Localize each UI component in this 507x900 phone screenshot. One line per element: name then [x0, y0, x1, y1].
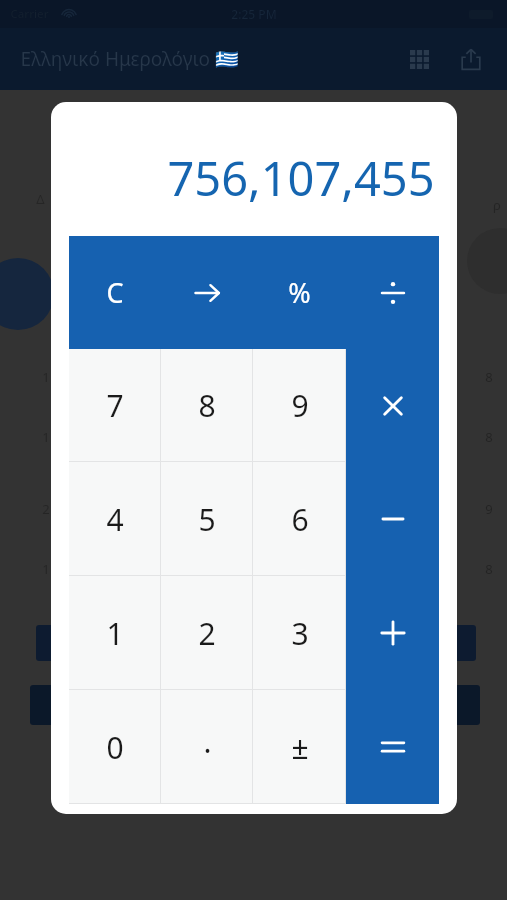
- button[interactable]: 1: [69, 576, 161, 690]
- staticText: 9: [291, 385, 309, 426]
- button[interactable]: .: [161, 690, 253, 804]
- button[interactable]: 5: [161, 462, 253, 576]
- staticText: 2:25 PM: [231, 6, 277, 22]
- staticText: 8: [485, 560, 493, 578]
- staticText: Δ: [36, 190, 45, 208]
- staticText: 1: [42, 368, 50, 386]
- staticText: C: [106, 274, 124, 311]
- button[interactable]: [346, 690, 439, 804]
- button[interactable]: 9: [253, 349, 346, 462]
- staticText: ρ: [493, 196, 501, 214]
- staticText: 8: [198, 385, 216, 426]
- button[interactable]: 4: [69, 462, 161, 576]
- staticText: 5: [198, 499, 216, 540]
- staticText: 4: [106, 499, 124, 540]
- staticText: 8: [485, 428, 493, 446]
- staticText: 8: [485, 368, 493, 386]
- staticText: 9: [485, 500, 493, 518]
- button[interactable]: [346, 576, 439, 690]
- button[interactable]: [346, 349, 439, 462]
- button[interactable]: [161, 236, 253, 349]
- button[interactable]: 8: [161, 349, 253, 462]
- button[interactable]: 0: [69, 690, 161, 804]
- button[interactable]: Apps grid: [399, 39, 439, 79]
- staticText: ±: [291, 727, 309, 768]
- staticText: 2: [42, 500, 50, 518]
- staticText: 2: [198, 613, 216, 654]
- button[interactable]: 6: [253, 462, 346, 576]
- button[interactable]: 7: [69, 349, 161, 462]
- staticText: 1: [42, 428, 50, 446]
- button[interactable]: ±: [253, 690, 346, 804]
- button[interactable]: [346, 236, 439, 349]
- staticText: 0: [106, 727, 124, 768]
- staticText: %: [288, 274, 311, 311]
- button[interactable]: [346, 462, 439, 576]
- staticText: .: [203, 721, 212, 762]
- button[interactable]: C: [69, 236, 161, 349]
- button[interactable]: %: [253, 236, 346, 349]
- staticText: 1: [42, 560, 50, 578]
- button[interactable]: 2: [161, 576, 253, 690]
- staticText: 3: [291, 613, 309, 654]
- button[interactable]: Share: [451, 39, 491, 79]
- staticText: 1: [106, 613, 124, 654]
- staticText: 6: [291, 499, 309, 540]
- staticText: 7: [106, 385, 124, 426]
- staticText: 756,107,455: [167, 146, 435, 210]
- button[interactable]: 3: [253, 576, 346, 690]
- staticText: Ελληνικό Ημερολόγιο 🇬🇷: [20, 46, 239, 72]
